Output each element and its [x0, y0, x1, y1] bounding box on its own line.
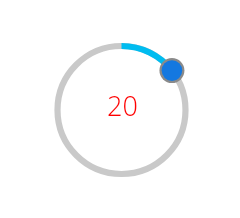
button[interactable]: Circular slider, value 20: [0, 0, 240, 218]
staticText: 20: [107, 87, 138, 124]
